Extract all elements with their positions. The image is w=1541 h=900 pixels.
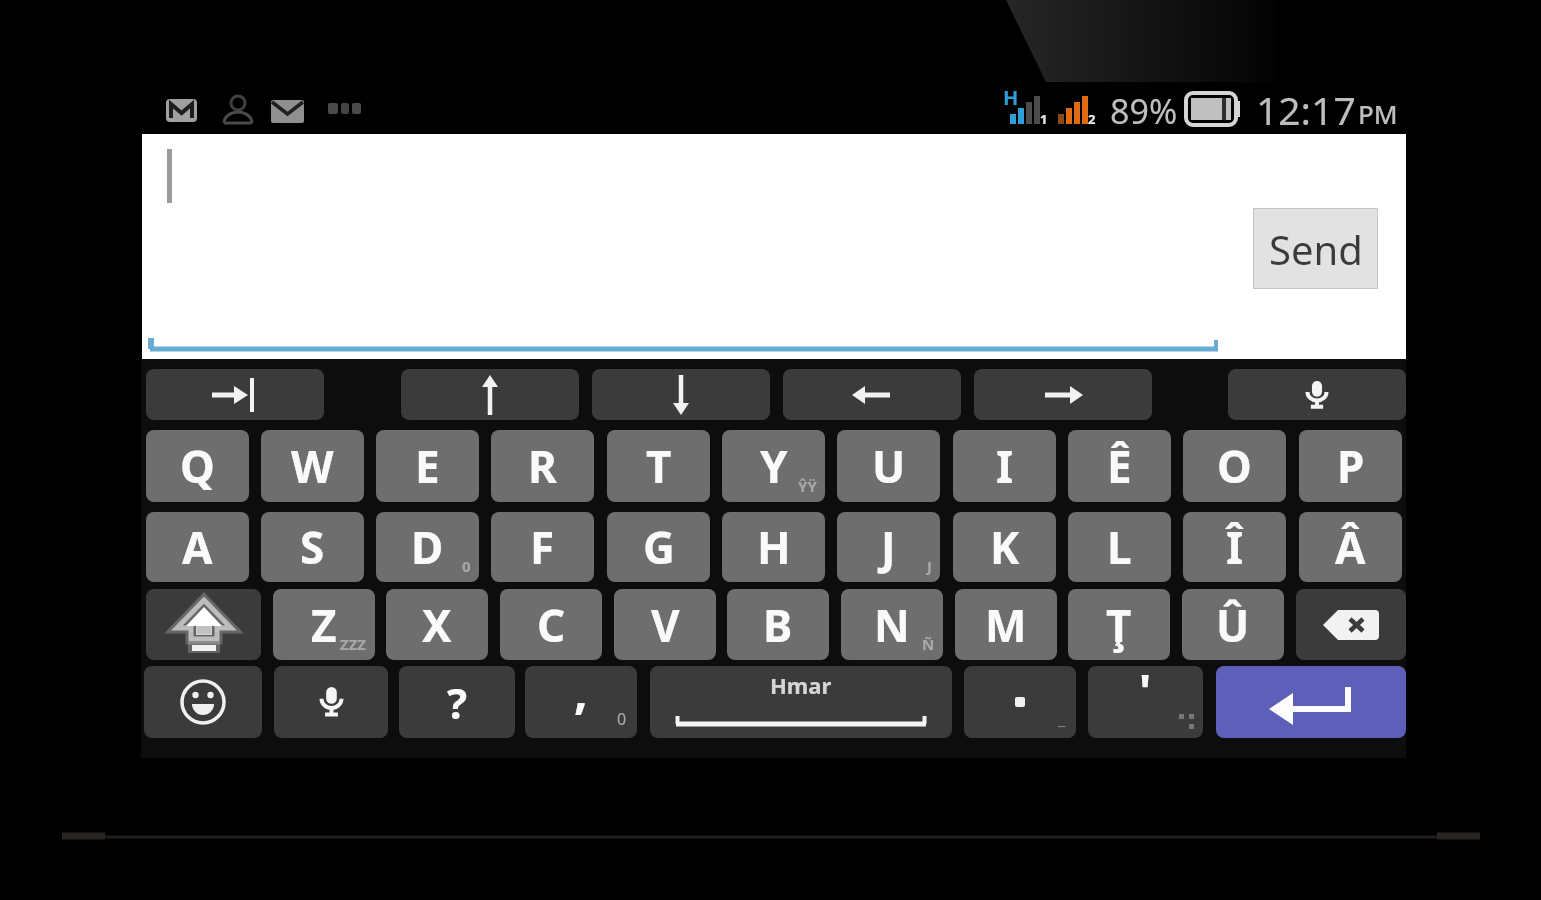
staticText: ' xyxy=(1139,666,1152,722)
staticText: W xyxy=(291,436,334,496)
button[interactable]: Y xyxy=(722,430,825,502)
button[interactable]: S xyxy=(261,512,364,582)
staticText: D xyxy=(411,517,444,577)
button[interactable]: _ xyxy=(964,666,1076,738)
button[interactable]: M xyxy=(955,589,1057,660)
button[interactable]: N xyxy=(841,589,943,660)
button[interactable]: U xyxy=(837,430,940,502)
staticText: ZZZ xyxy=(340,634,367,654)
button[interactable]: Hmar xyxy=(650,666,952,738)
staticText: Ê xyxy=(1107,436,1132,496)
button[interactable]: Ţ xyxy=(1068,589,1170,660)
button[interactable]: X xyxy=(386,589,488,660)
button[interactable]: , xyxy=(525,666,637,738)
button[interactable]: W xyxy=(261,430,364,502)
staticText: V xyxy=(651,595,680,655)
button[interactable]: D xyxy=(376,512,479,582)
button[interactable]: Î xyxy=(1183,512,1286,582)
staticText: ŶŸ xyxy=(798,476,817,496)
staticText: _ xyxy=(1058,708,1066,730)
button[interactable]: J xyxy=(837,512,940,582)
button[interactable]: A xyxy=(146,512,249,582)
button[interactable]: F xyxy=(491,512,594,582)
button[interactable]: P xyxy=(1299,430,1402,502)
staticText: , xyxy=(574,666,588,723)
button[interactable]: O xyxy=(1183,430,1286,502)
staticText: F xyxy=(530,517,555,577)
staticText: 89% xyxy=(1110,88,1178,134)
staticText: Hmar xyxy=(770,670,832,700)
button[interactable] xyxy=(783,369,961,420)
button[interactable] xyxy=(146,589,261,660)
button[interactable]: Z xyxy=(273,589,375,660)
staticText: R xyxy=(528,436,557,496)
button[interactable]: G xyxy=(607,512,710,582)
staticText: G xyxy=(643,517,675,577)
staticText: Û xyxy=(1216,595,1250,655)
button[interactable]: I xyxy=(953,430,1056,502)
staticText: Send xyxy=(1269,222,1363,276)
staticText: N xyxy=(874,595,910,655)
button[interactable]: R xyxy=(491,430,594,502)
staticText: I xyxy=(996,436,1014,496)
staticText: U xyxy=(872,436,906,496)
staticText: Y xyxy=(760,436,788,496)
staticText: O xyxy=(1217,436,1252,496)
staticText: C xyxy=(537,595,566,655)
staticText: Z xyxy=(311,595,337,655)
staticText: H xyxy=(757,517,791,577)
button[interactable]: Send xyxy=(1253,208,1378,289)
staticText: B xyxy=(763,595,793,655)
staticText: Ñ xyxy=(922,634,935,654)
staticText: A xyxy=(182,517,213,577)
button[interactable]: T xyxy=(607,430,710,502)
staticText: Q xyxy=(180,436,215,496)
button[interactable]: Â xyxy=(1299,512,1402,582)
button[interactable] xyxy=(144,666,262,738)
button[interactable]: ' xyxy=(1088,666,1203,738)
staticText: S xyxy=(300,517,325,577)
button[interactable] xyxy=(1216,666,1406,738)
staticText: Â xyxy=(1335,517,1366,577)
staticText: H xyxy=(1003,84,1019,111)
staticText: X xyxy=(422,595,452,655)
button[interactable]: V xyxy=(614,589,716,660)
staticText: T xyxy=(646,436,672,496)
button[interactable]: C xyxy=(500,589,602,660)
staticText: P xyxy=(1337,436,1365,496)
button[interactable] xyxy=(1228,369,1406,420)
staticText: PM xyxy=(1358,96,1398,131)
button[interactable] xyxy=(592,369,770,420)
button[interactable] xyxy=(146,369,324,420)
staticText: 0 xyxy=(617,708,627,730)
staticText: J xyxy=(927,556,932,576)
staticText: 2 xyxy=(1088,110,1096,128)
staticText: Î xyxy=(1226,517,1244,577)
button[interactable]: Û xyxy=(1182,589,1284,660)
staticText: 12:17 xyxy=(1256,83,1356,136)
staticText: J xyxy=(881,517,896,577)
button[interactable]: B xyxy=(727,589,829,660)
staticText: M xyxy=(985,595,1027,655)
staticText: K xyxy=(990,517,1020,577)
button[interactable] xyxy=(274,666,388,738)
button[interactable]: K xyxy=(953,512,1056,582)
button[interactable]: E xyxy=(376,430,479,502)
button[interactable]: L xyxy=(1068,512,1171,582)
button[interactable] xyxy=(974,369,1152,420)
staticText: ? xyxy=(447,674,468,731)
staticText: Ţ xyxy=(1106,595,1132,655)
button[interactable]: ? xyxy=(399,666,515,738)
button[interactable] xyxy=(1296,589,1406,660)
staticText: 0 xyxy=(462,556,471,576)
button[interactable]: Q xyxy=(146,430,249,502)
staticText: L xyxy=(1107,517,1132,577)
staticText: 1 xyxy=(1040,110,1048,128)
button[interactable]: Ê xyxy=(1068,430,1171,502)
staticText: E xyxy=(415,436,440,496)
button[interactable] xyxy=(401,369,579,420)
button[interactable]: H xyxy=(722,512,825,582)
